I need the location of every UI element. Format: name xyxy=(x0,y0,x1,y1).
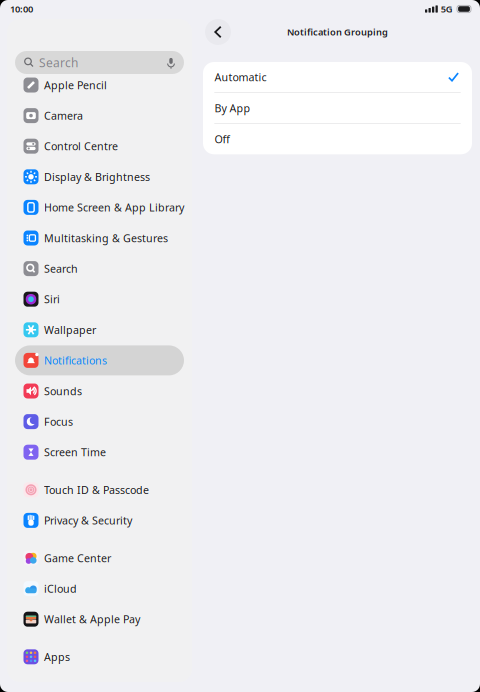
button[interactable]: Notifications xyxy=(15,345,184,375)
staticText: iCloud xyxy=(44,581,77,596)
button[interactable]: Multitasking & Gestures xyxy=(15,223,184,253)
button[interactable]: Wallet & Apple Pay xyxy=(15,604,184,634)
staticText: Home Screen & App Library xyxy=(44,200,184,214)
staticText: 5G xyxy=(441,3,453,15)
staticText: Control Centre xyxy=(44,139,118,153)
button[interactable]: Camera xyxy=(15,101,184,131)
staticText: Screen Time xyxy=(44,445,106,459)
staticText: Apple Pencil xyxy=(44,78,107,92)
staticText: Wallpaper xyxy=(44,323,96,337)
staticText: Touch ID & Passcode xyxy=(44,483,149,497)
button[interactable]: Home Screen & App Library xyxy=(15,192,184,222)
button[interactable]: Apple Pencil xyxy=(15,70,184,100)
staticText: Multitasking & Gestures xyxy=(44,231,168,245)
button[interactable]: Privacy & Security xyxy=(15,505,184,535)
staticText: Wallet & Apple Pay xyxy=(44,612,140,626)
staticText: Camera xyxy=(44,108,83,123)
button[interactable]: Screen Time xyxy=(15,437,184,467)
staticText: Search xyxy=(44,261,78,276)
button[interactable]: Sounds xyxy=(15,376,184,406)
button[interactable]: Siri xyxy=(15,284,184,314)
button[interactable]: Back xyxy=(205,19,231,45)
button[interactable]: Touch ID & Passcode xyxy=(15,475,184,505)
staticText: Focus xyxy=(44,414,73,429)
staticText: Game Center xyxy=(44,551,111,565)
button[interactable]: Search xyxy=(15,254,184,284)
staticText: 10:00 xyxy=(10,3,33,15)
button[interactable]: iCloud xyxy=(15,574,184,604)
staticText: By App xyxy=(214,101,250,115)
button[interactable]: Focus xyxy=(15,407,184,437)
staticText: Off xyxy=(214,132,229,146)
button[interactable]: Display & Brightness xyxy=(15,162,184,192)
staticText: Sounds xyxy=(44,384,82,398)
staticText: Search xyxy=(39,54,78,70)
button[interactable]: Apps xyxy=(15,642,184,672)
button[interactable]: Control Centre xyxy=(15,131,184,161)
button[interactable]: Automatic xyxy=(203,62,472,93)
staticText: Privacy & Security xyxy=(44,513,132,527)
button[interactable]: Wallpaper xyxy=(15,315,184,345)
staticText: Notifications xyxy=(44,353,107,367)
staticText: Automatic xyxy=(214,70,266,84)
staticText: Notification Grouping xyxy=(287,26,388,38)
staticText: Display & Brightness xyxy=(44,170,150,184)
button[interactable]: Game Center xyxy=(15,543,184,573)
staticText: Siri xyxy=(44,292,60,306)
button[interactable]: By App xyxy=(203,93,472,124)
staticText: Apps xyxy=(44,650,70,664)
button[interactable]: Off xyxy=(203,124,472,154)
